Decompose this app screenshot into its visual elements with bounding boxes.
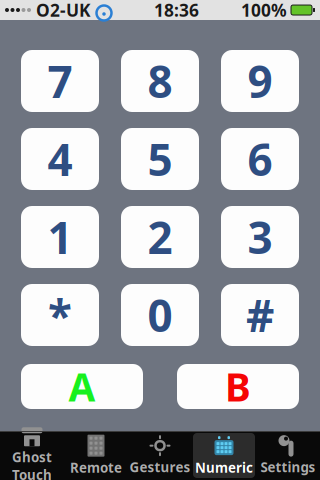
button[interactable]: Ghost Touch xyxy=(1,433,63,478)
button[interactable]: Numeric xyxy=(193,433,255,478)
button[interactable]: 8 xyxy=(121,50,199,112)
button[interactable]: 1 xyxy=(21,206,99,268)
button[interactable]: 7 xyxy=(21,50,99,112)
staticText: 5 xyxy=(147,130,172,188)
button[interactable]: 6 xyxy=(221,128,299,190)
staticText: Numeric xyxy=(195,459,253,476)
staticText: 18:36 xyxy=(154,0,199,21)
staticText: # xyxy=(246,286,274,344)
staticText: 100% xyxy=(241,0,287,21)
staticText: 6 xyxy=(247,130,272,188)
staticText: O2-UK xyxy=(36,0,91,21)
button[interactable]: 3 xyxy=(221,206,299,268)
staticText: Settings xyxy=(260,458,315,476)
button[interactable]: Remote xyxy=(65,433,127,478)
button[interactable]: Settings xyxy=(257,433,319,478)
button[interactable]: 0 xyxy=(121,284,199,346)
button[interactable]: Gestures xyxy=(129,433,191,478)
button[interactable]: 4 xyxy=(21,128,99,190)
button[interactable]: 2 xyxy=(121,206,199,268)
staticText: 3 xyxy=(247,208,272,266)
staticText: * xyxy=(48,286,72,344)
staticText: 0 xyxy=(147,286,172,344)
button[interactable]: B xyxy=(177,364,299,409)
staticText: 7 xyxy=(47,52,72,110)
staticText: 8 xyxy=(147,52,172,110)
button[interactable]: A xyxy=(21,364,143,409)
button[interactable]: # xyxy=(221,284,299,346)
staticText: Remote xyxy=(70,459,122,476)
button[interactable]: 9 xyxy=(221,50,299,112)
staticText: A xyxy=(68,361,95,412)
staticText: 9 xyxy=(247,52,272,110)
staticText: Gestures xyxy=(129,458,190,476)
staticText: 2 xyxy=(147,208,172,266)
staticText: Ghost Touch xyxy=(12,448,52,480)
staticText: 1 xyxy=(47,208,72,266)
button[interactable]: * xyxy=(21,284,99,346)
staticText: 4 xyxy=(47,130,72,188)
button[interactable]: 5 xyxy=(121,128,199,190)
staticText: B xyxy=(225,361,251,412)
